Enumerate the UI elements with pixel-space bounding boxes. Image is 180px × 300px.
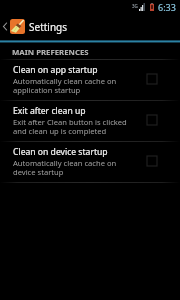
staticText: Automatically clean cache on device star…: [13, 158, 117, 177]
staticText: 6:33: [158, 1, 176, 13]
staticText: Clean on app startup: [13, 64, 98, 76]
staticText: Clean on device startup: [13, 146, 108, 158]
staticText: Settings: [29, 20, 68, 34]
staticText: Exit after Clean button is clicked and c…: [13, 117, 127, 136]
staticText: Exit after clean up: [13, 105, 86, 117]
staticText: MAIN PREFERENCES: [12, 47, 89, 58]
staticText: Automatically clean cache on application…: [13, 76, 117, 95]
button[interactable]: Back: [0, 13, 10, 40]
button[interactable]: Exit after clean up: [0, 101, 180, 141]
staticText: 3G: [132, 3, 138, 9]
button[interactable]: Clean on app startup: [0, 60, 180, 100]
button[interactable]: Clean on device startup: [0, 142, 180, 182]
